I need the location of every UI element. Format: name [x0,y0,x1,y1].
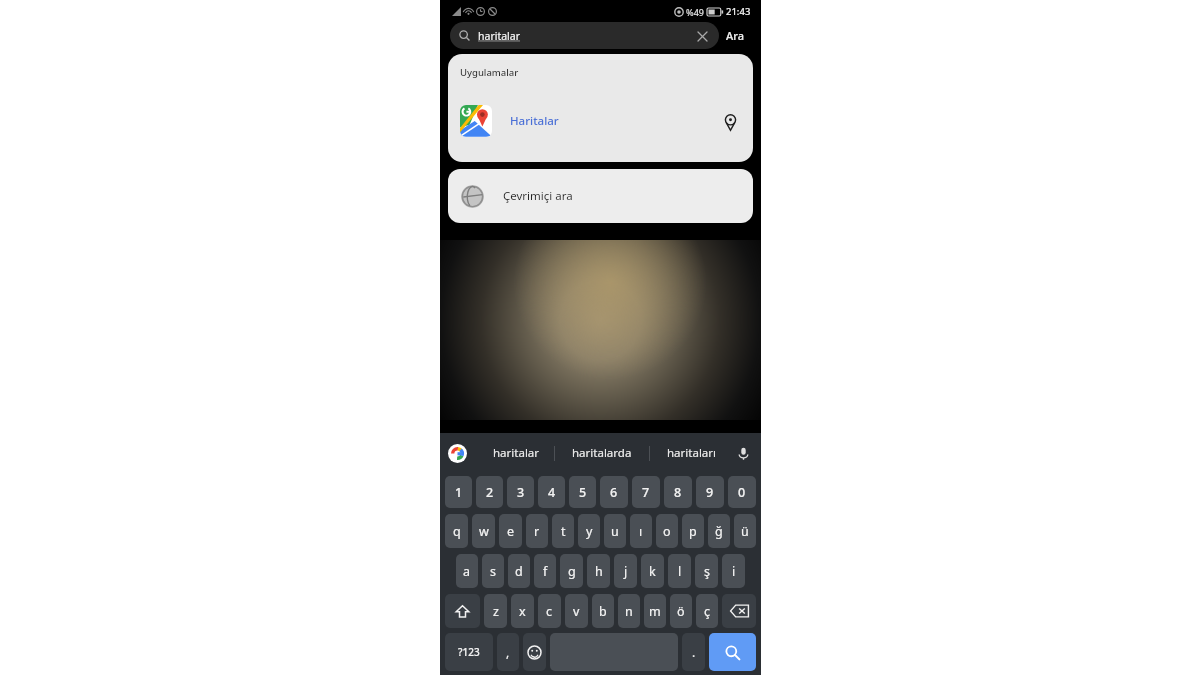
button[interactable]: , [497,633,519,671]
button[interactable]: 8 [664,476,692,508]
button[interactable]: 4 [538,476,565,508]
button[interactable]: h [587,554,610,588]
button[interactable]: ç [696,594,718,628]
button[interactable]: Haritalar [448,79,753,162]
button[interactable]: haritalar [478,445,554,461]
button[interactable]: y [578,514,600,548]
button[interactable]: 2 [476,476,503,508]
button[interactable]: g [560,554,583,588]
staticText: s [490,563,496,580]
button[interactable]: Shift [445,594,480,628]
staticText: w [479,523,489,540]
staticText: z [493,603,499,620]
button[interactable]: 1 [445,476,472,508]
staticText: haritalarda [572,445,632,461]
button[interactable]: z [484,594,507,628]
button[interactable]: f [534,554,556,588]
button[interactable]: s [482,554,504,588]
staticText: 3 [517,484,525,501]
staticText: m [649,603,661,620]
button[interactable]: Emoji [523,633,546,671]
button[interactable]: u [604,514,626,548]
button[interactable]: q [445,514,468,548]
button[interactable]: ?123 [445,633,493,671]
button[interactable]: c [538,594,561,628]
button[interactable]: 0 [728,476,756,508]
button[interactable]: Backspace [722,594,756,628]
button[interactable]: 6 [600,476,628,508]
button[interactable]: Search [709,633,756,671]
button[interactable]: x [511,594,534,628]
staticText: 21:43 [726,5,751,18]
button[interactable]: a [456,554,478,588]
staticText: 6 [610,484,618,501]
button[interactable]: ı [630,514,652,548]
button[interactable]: d [508,554,530,588]
button[interactable]: p [682,514,704,548]
button[interactable]: Çevrimiçi ara [448,169,753,223]
button[interactable]: 9 [696,476,724,508]
staticText: v [573,603,580,620]
staticText: 4 [548,484,556,501]
staticText: p [689,523,697,540]
button[interactable]: haritalar [450,22,719,49]
button[interactable]: v [565,594,588,628]
button[interactable]: Clear [694,28,710,44]
button[interactable]: Voice input [733,443,753,463]
button[interactable]: n [618,594,640,628]
staticText: b [599,603,607,620]
staticText: r [534,523,540,540]
button[interactable]: . [682,633,705,671]
button[interactable]: 3 [507,476,534,508]
staticText: %49 [686,6,704,18]
button[interactable]: j [614,554,637,588]
staticText: ö [677,603,685,620]
button[interactable]: k [641,554,664,588]
button[interactable]: haritaları [650,445,733,461]
button[interactable]: m [644,594,666,628]
staticText: y [586,523,593,540]
other: Location [719,110,741,132]
staticText: haritalar [493,445,540,461]
staticText: q [453,523,461,540]
staticText: t [561,523,566,540]
staticText: Ara [726,28,744,43]
button[interactable]: e [499,514,522,548]
staticText: ı [639,523,643,540]
staticText: , [506,644,510,660]
staticText: ğ [715,523,723,540]
staticText: ş [704,563,710,580]
button[interactable]: b [592,594,614,628]
button[interactable]: w [472,514,495,548]
staticText: n [625,603,633,620]
staticText: x [519,603,526,620]
staticText: 2 [486,484,494,501]
button[interactable]: i [722,554,745,588]
button[interactable]: haritalarda [555,445,649,461]
staticText: Haritalar [510,113,559,129]
button[interactable]: l [668,554,691,588]
staticText: o [663,523,671,540]
button[interactable]: Google [448,444,467,463]
button[interactable]: ö [670,594,692,628]
staticText: g [568,563,576,580]
staticText: i [732,563,736,580]
staticText: j [624,563,628,580]
staticText: Çevrimiçi ara [503,188,573,204]
staticText: haritalar [478,29,521,43]
staticText: ç [704,603,711,620]
staticText: 0 [738,484,746,501]
button[interactable]: o [656,514,678,548]
button[interactable]: r [526,514,548,548]
button[interactable]: Ara [719,24,751,47]
button[interactable]: t [552,514,574,548]
button[interactable]: ş [695,554,718,588]
button[interactable]: ü [734,514,756,548]
button[interactable]: ğ [708,514,730,548]
staticText: f [543,563,548,580]
staticText: ü [741,523,749,540]
button[interactable]: 5 [569,476,596,508]
button[interactable]: 7 [632,476,660,508]
staticText: 9 [706,484,714,501]
